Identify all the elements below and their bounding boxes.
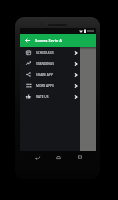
button[interactable]: MORE APPS [20,80,80,91]
button[interactable]: Recents [75,152,85,162]
button[interactable]: Back [24,37,31,44]
button[interactable] [20,52,96,69]
staticText: SCHEDULES [36,51,54,55]
button[interactable]: Back [32,152,42,162]
staticText: RATE US [36,95,49,99]
button[interactable]: SHARE APP [20,69,80,80]
staticText: MORE APPS [36,84,54,88]
button[interactable] [20,137,96,151]
staticText: STANDINGS [36,62,54,66]
staticText: Scores Serie A [35,38,62,43]
staticText: SHARE APP [36,73,53,77]
button[interactable]: SCHEDULES [20,47,80,58]
button[interactable] [20,120,96,137]
button[interactable]: Home [53,152,63,162]
button[interactable] [20,86,96,103]
button[interactable]: STANDINGS [20,58,80,69]
button[interactable]: RATE US [20,91,80,102]
button[interactable] [20,69,96,86]
button[interactable] [20,103,96,120]
